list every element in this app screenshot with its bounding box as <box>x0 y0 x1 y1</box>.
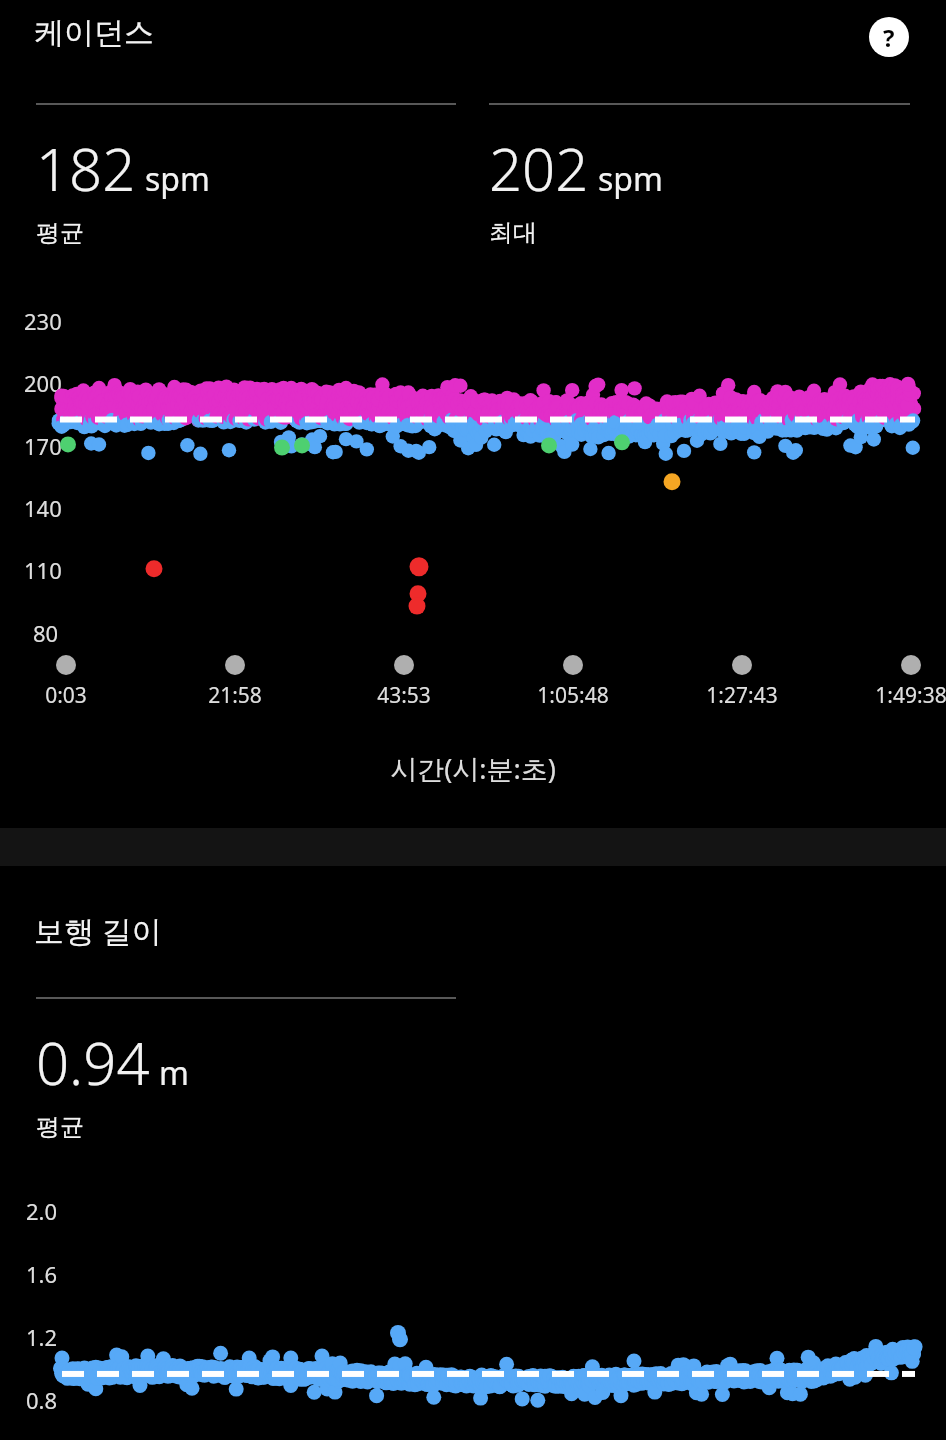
staticText: 0.94 <box>36 1023 150 1102</box>
staticText: 202 <box>489 129 589 208</box>
staticText: 0:03 <box>45 681 87 710</box>
staticText: 최대 <box>489 218 537 248</box>
staticText: spm <box>145 157 210 201</box>
staticText: spm <box>598 157 663 201</box>
staticText: 200 <box>24 368 62 398</box>
staticText: 1.6 <box>26 1259 58 1289</box>
staticText: ? <box>883 21 895 54</box>
staticText: 110 <box>24 555 62 585</box>
staticText: 보행 길이 <box>34 910 162 951</box>
staticText: 21:58 <box>208 681 262 710</box>
staticText: 0.8 <box>26 1385 58 1415</box>
staticText: 1:05:48 <box>537 681 609 710</box>
staticText: 시간(시:분:초) <box>390 750 556 787</box>
button[interactable]: 도움말 <box>866 14 912 60</box>
staticText: 2.0 <box>26 1196 58 1226</box>
staticText: 140 <box>24 493 62 523</box>
staticText: 1:49:38 <box>875 681 946 710</box>
staticText: 80 <box>33 618 59 648</box>
staticText: 평균 <box>36 218 84 248</box>
staticText: 1:27:43 <box>706 681 778 710</box>
staticText: 평균 <box>36 1112 84 1142</box>
staticText: 1.2 <box>26 1322 58 1352</box>
staticText: 182 <box>36 129 136 208</box>
staticText: 43:53 <box>377 681 431 710</box>
staticText: m <box>159 1051 189 1095</box>
staticText: 230 <box>24 306 62 336</box>
staticText: 170 <box>24 431 62 461</box>
staticText: 케이던스 <box>34 14 154 52</box>
